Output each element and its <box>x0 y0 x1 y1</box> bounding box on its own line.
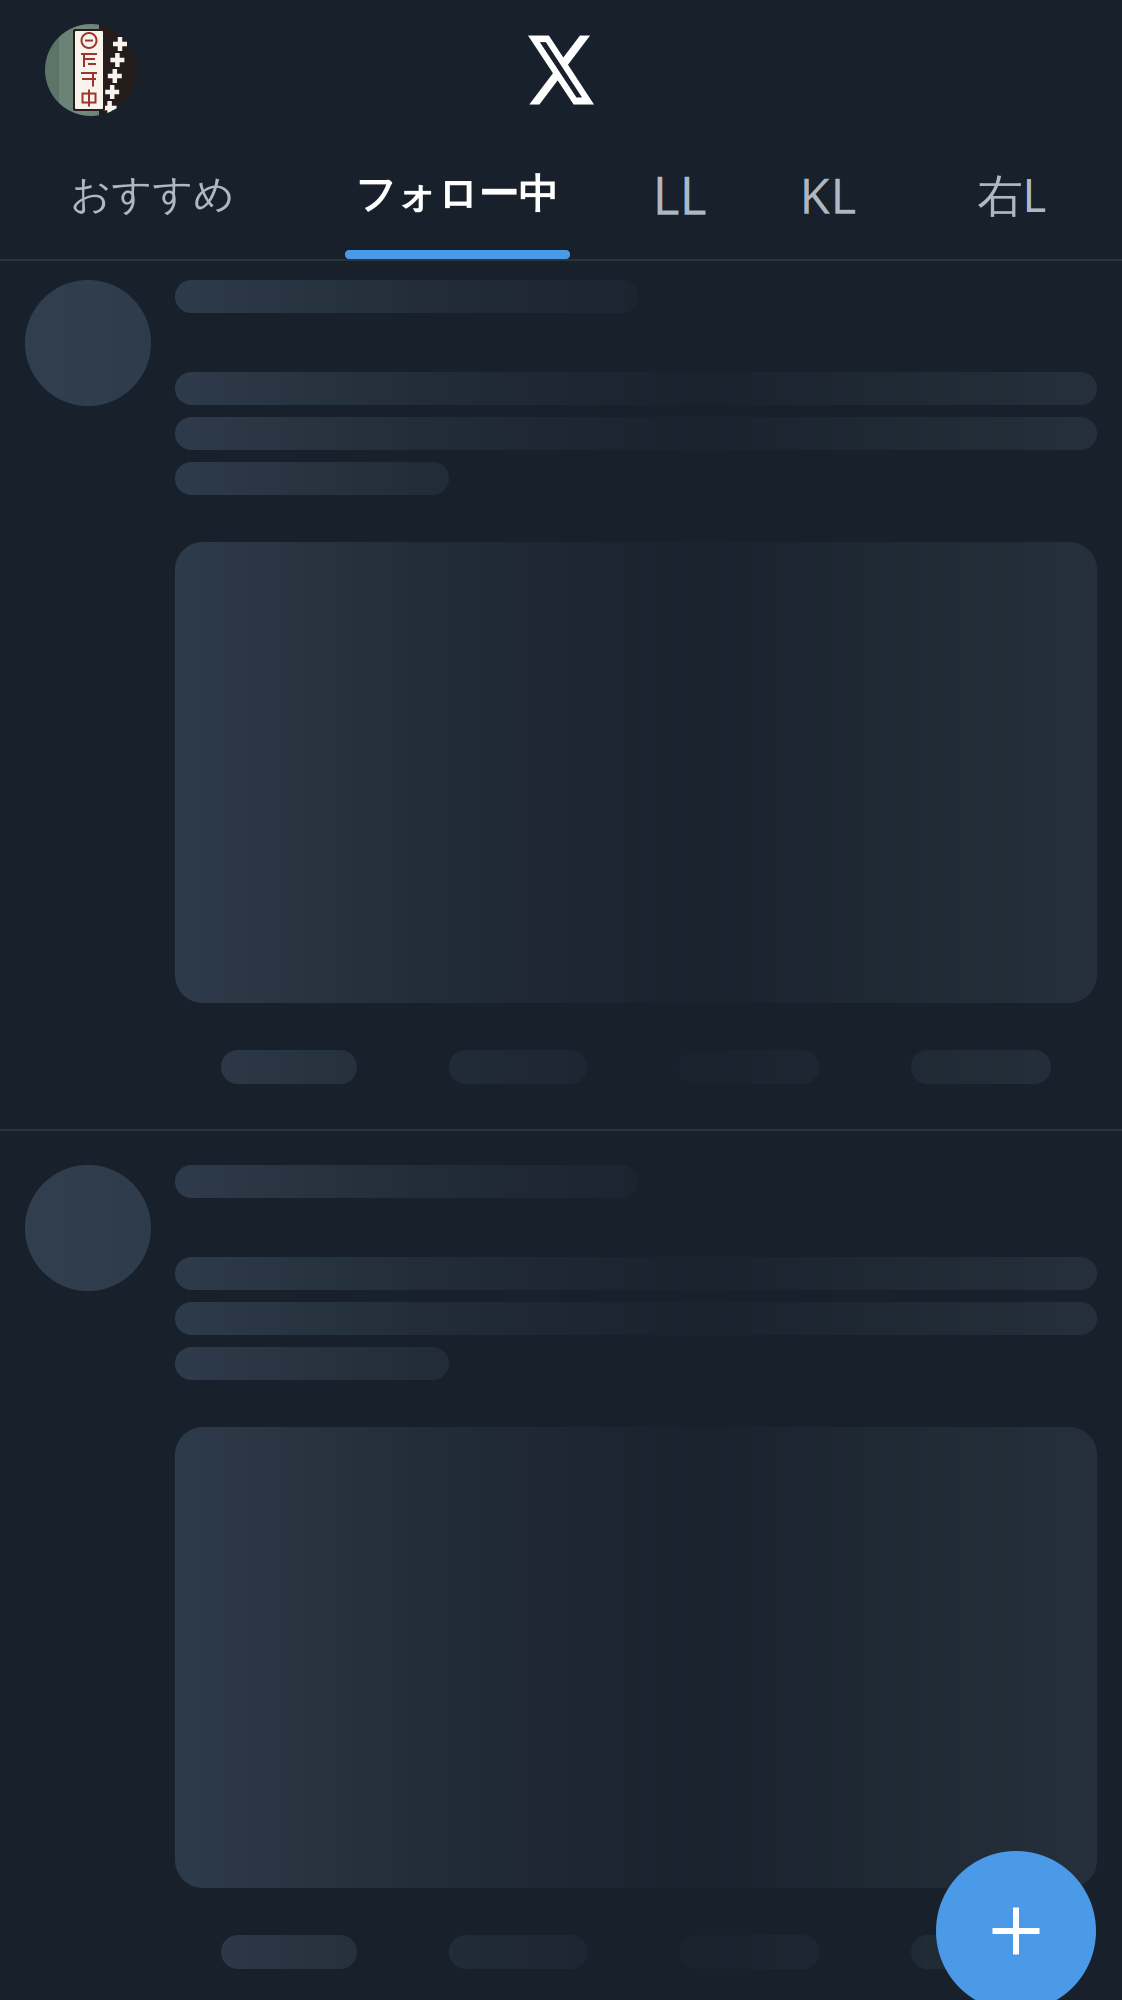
button[interactable]: Profile <box>45 24 137 116</box>
button[interactable]: Share <box>911 1050 1051 1084</box>
staticText: LL <box>652 160 706 229</box>
staticText: KL <box>799 162 856 227</box>
button[interactable]: LL <box>609 140 750 249</box>
button[interactable]: おすすめ <box>0 140 305 249</box>
staticText: おすすめ <box>70 170 234 219</box>
button[interactable]: X home <box>528 35 594 104</box>
button[interactable]: Compose new post <box>936 1851 1096 2000</box>
button[interactable]: Share <box>911 1935 1051 1969</box>
button[interactable]: Reply <box>221 1935 357 1969</box>
button[interactable]: Reply <box>221 1050 357 1084</box>
button[interactable]: KL <box>750 140 906 249</box>
button[interactable]: 右L <box>906 140 1118 249</box>
button[interactable]: フォロー中 <box>305 140 609 249</box>
staticText: 右L <box>977 164 1046 225</box>
staticText: フォロー中 <box>355 170 558 219</box>
